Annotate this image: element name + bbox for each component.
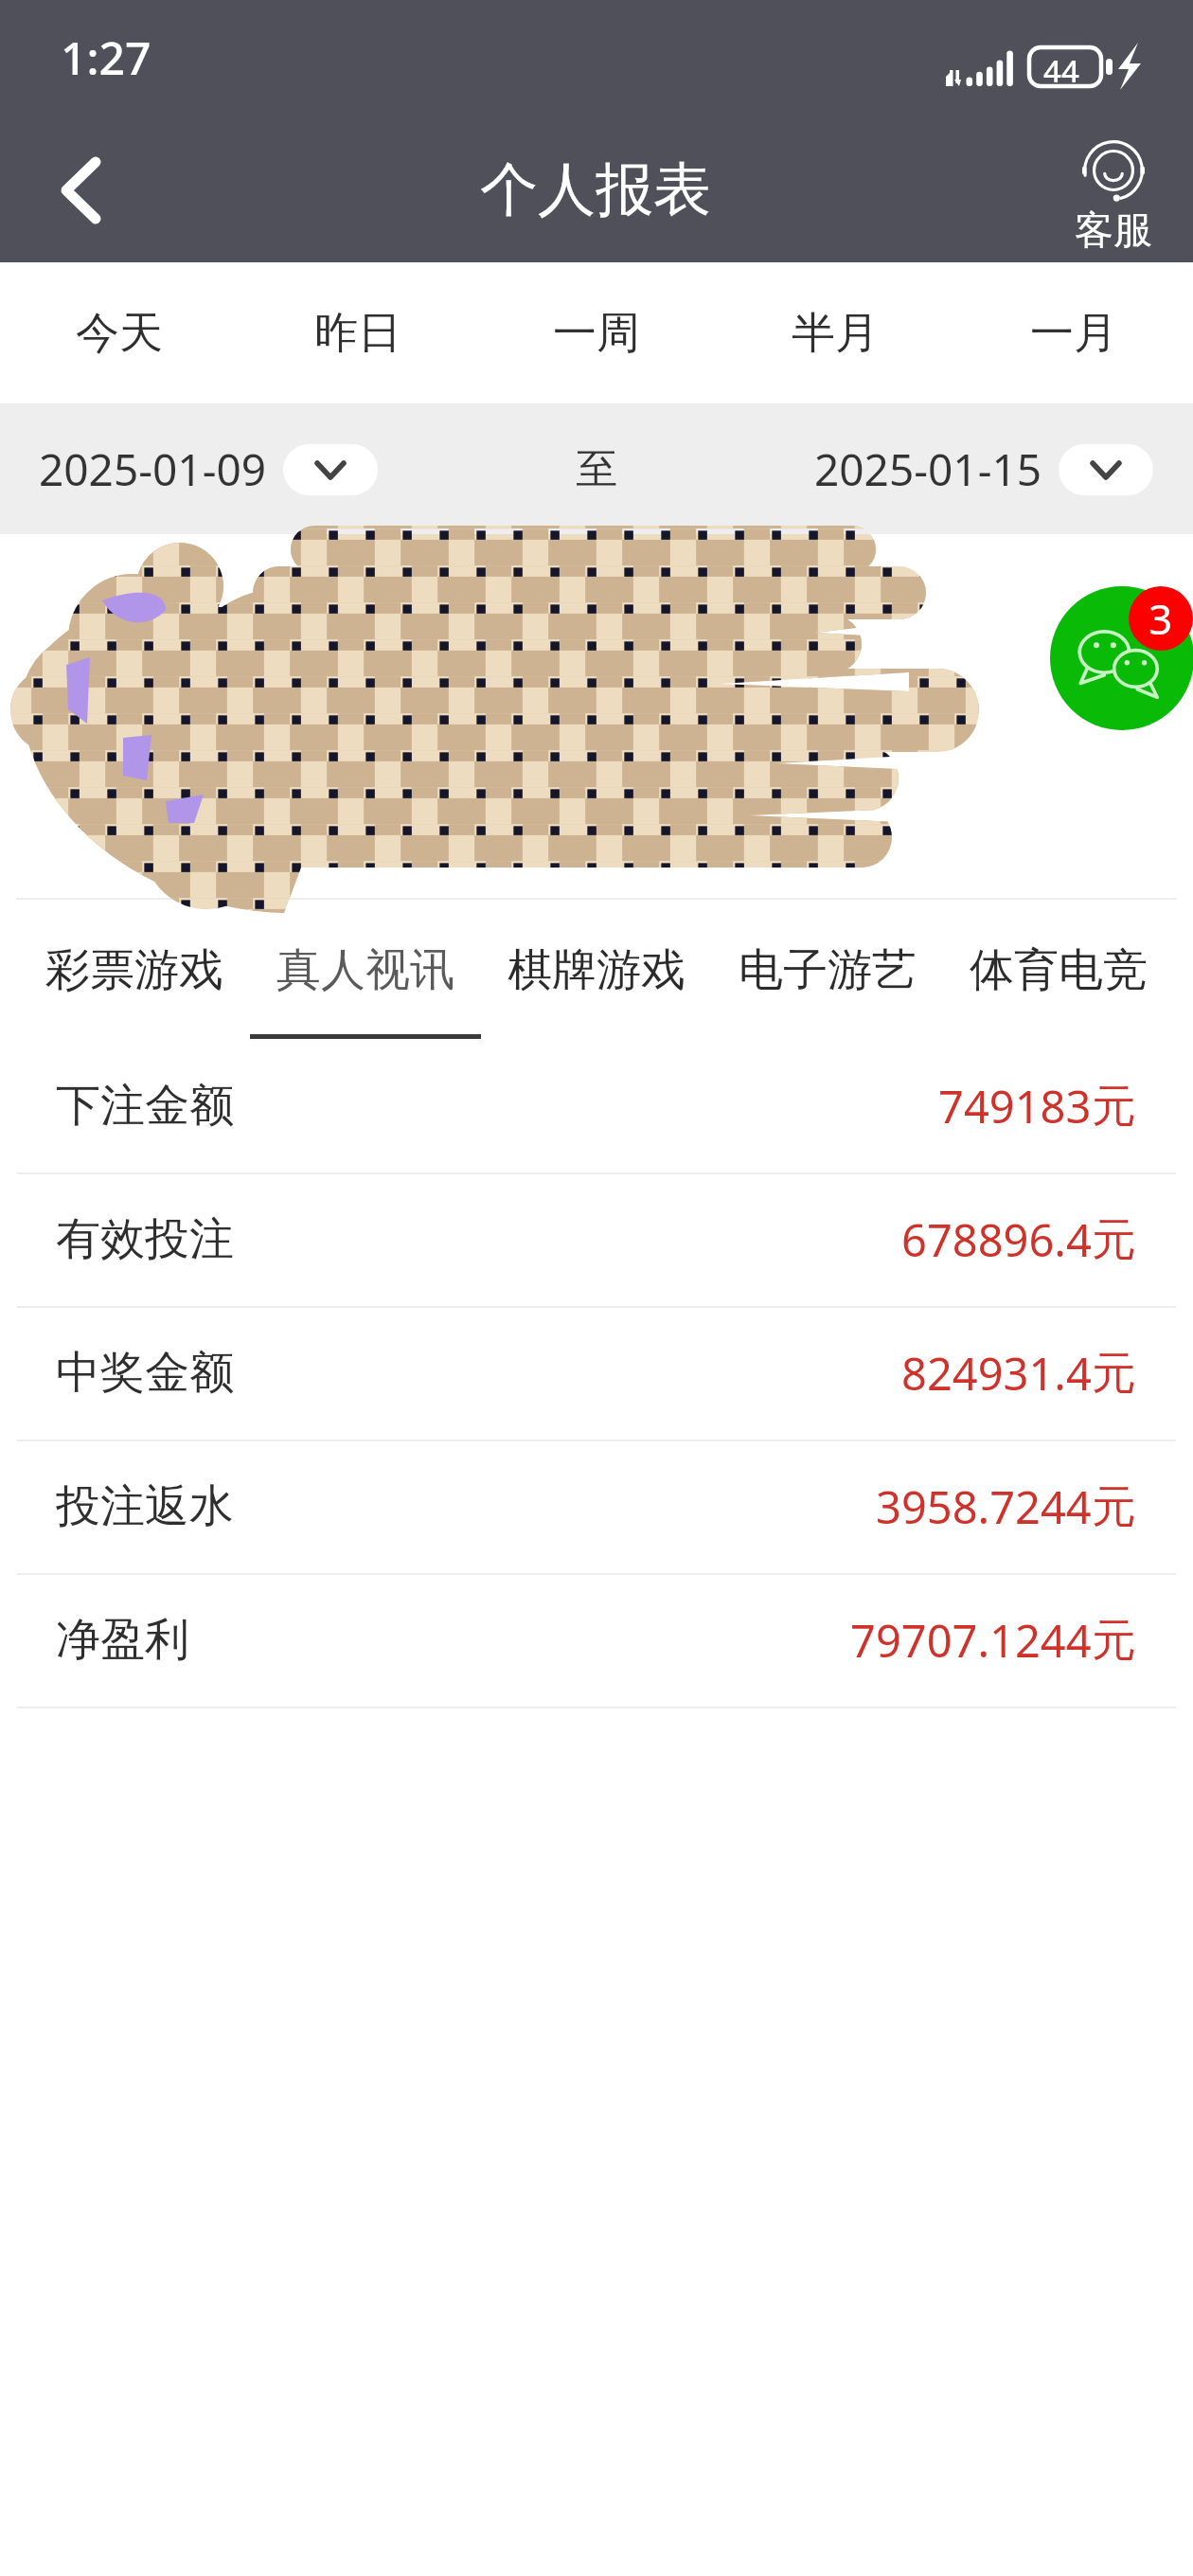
staticText: 今天: [76, 306, 163, 361]
staticText: 2025-01-15: [814, 439, 1042, 499]
button[interactable]: 昨日: [239, 262, 477, 403]
staticText: 3: [1148, 590, 1173, 647]
staticText: 元: [1092, 1079, 1136, 1135]
staticText: 客服: [1075, 206, 1152, 256]
staticText: 749183: [938, 1076, 1092, 1136]
staticText: 2025-01-09: [39, 439, 267, 499]
button[interactable]: 棋牌游戏: [481, 898, 712, 1039]
staticText: 下注金额: [56, 1078, 234, 1134]
staticText: 投注返水: [56, 1478, 234, 1534]
staticText: 真人视讯: [276, 942, 454, 998]
staticText: 棋牌游戏: [507, 942, 686, 998]
staticText: 净盈利: [56, 1612, 189, 1668]
staticText: 中奖金额: [56, 1345, 234, 1401]
staticText: 彩票游戏: [45, 942, 223, 998]
staticText: 元: [1092, 1613, 1136, 1669]
button[interactable]: WeChat: [1050, 586, 1193, 730]
staticText: 元: [1092, 1479, 1136, 1535]
staticText: 678896.4: [901, 1209, 1092, 1270]
button[interactable]: 半月: [716, 262, 954, 403]
staticText: 一周: [553, 306, 640, 361]
button[interactable]: 今天: [0, 262, 239, 403]
button[interactable]: 一月: [954, 262, 1193, 403]
staticText: 824931.4: [901, 1343, 1092, 1404]
button[interactable]: 真人视讯: [250, 898, 481, 1039]
button[interactable]: 净盈利: [0, 1573, 1193, 1707]
button[interactable]: 2025-01-09: [39, 439, 378, 499]
button[interactable]: 电子游艺: [712, 898, 943, 1039]
button[interactable]: 投注返水: [0, 1440, 1193, 1573]
staticText: 1:27: [61, 27, 151, 88]
button[interactable]: 一周: [477, 262, 716, 403]
staticText: 79707.1244: [850, 1610, 1092, 1671]
staticText: 一月: [1030, 306, 1117, 361]
staticText: 有效投注: [56, 1211, 234, 1267]
button[interactable]: 有效投注: [0, 1172, 1193, 1306]
staticText: 元: [1092, 1212, 1136, 1268]
staticText: 3958.7244: [876, 1476, 1092, 1537]
button[interactable]: 客服: [1066, 134, 1161, 256]
staticText: 至: [576, 443, 617, 495]
button[interactable]: 2025-01-15: [814, 439, 1153, 499]
staticText: 体育电竞: [970, 942, 1148, 998]
button[interactable]: 体育电竞: [943, 898, 1174, 1039]
button[interactable]: Back: [18, 127, 144, 253]
staticText: 半月: [792, 306, 879, 361]
staticText: 44: [1043, 49, 1079, 92]
button[interactable]: 下注金额: [0, 1039, 1193, 1172]
staticText: 个人报表: [480, 153, 711, 226]
staticText: 元: [1092, 1346, 1136, 1402]
staticText: 昨日: [314, 306, 401, 361]
button[interactable]: 彩票游戏: [19, 898, 250, 1039]
staticText: 电子游艺: [739, 942, 917, 998]
button[interactable]: 中奖金额: [0, 1306, 1193, 1440]
